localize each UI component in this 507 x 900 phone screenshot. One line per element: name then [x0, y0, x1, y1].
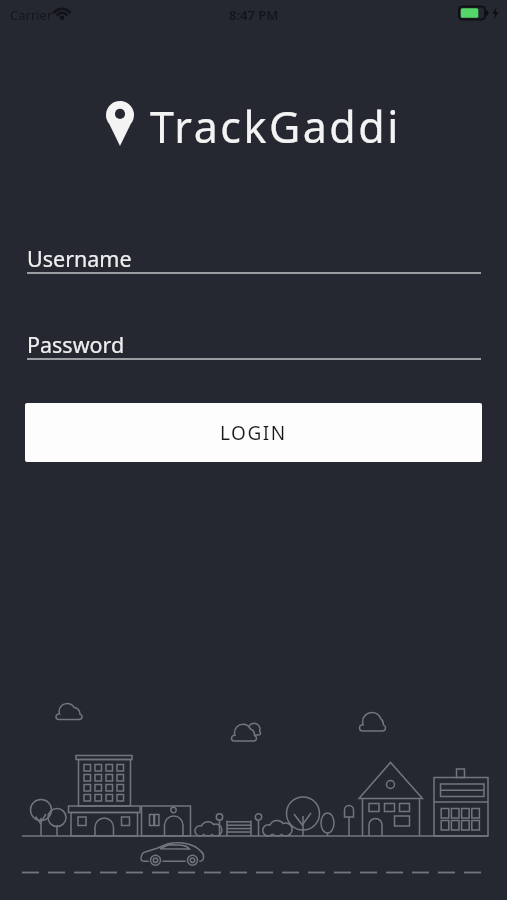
button[interactable]: Password [27, 330, 481, 362]
staticText: Carrier [10, 6, 53, 24]
button[interactable]: Username [27, 244, 481, 276]
button[interactable]: LOGIN [25, 403, 482, 462]
staticText: Username [27, 244, 132, 273]
staticText: 8:47 PM [229, 6, 279, 24]
staticText: Password [27, 330, 125, 359]
staticText: TrackGaddi [150, 97, 401, 149]
staticText: LOGIN [220, 420, 287, 446]
